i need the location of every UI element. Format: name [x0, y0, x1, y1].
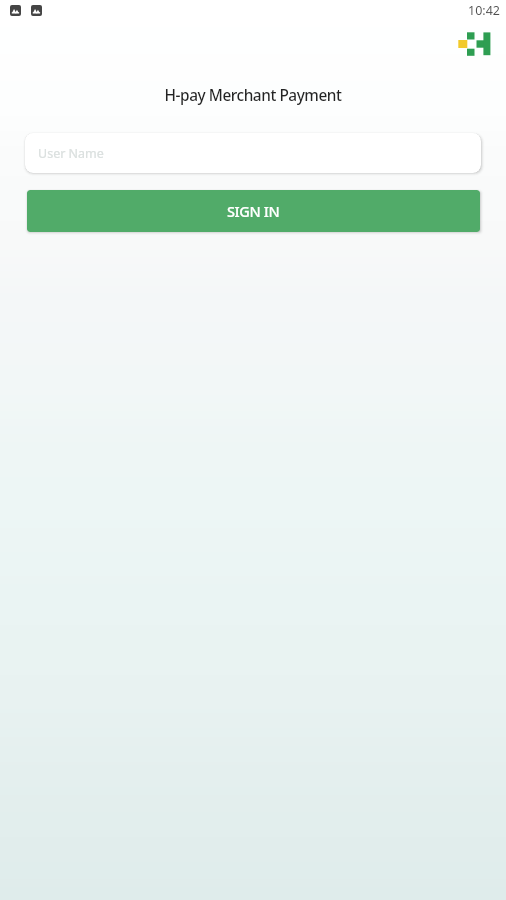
button[interactable]: User Name — [25, 133, 481, 173]
staticText: User Name — [38, 145, 104, 162]
staticText: H-pay Merchant Payment — [0, 85, 506, 106]
staticText: 10:42 — [468, 2, 500, 19]
staticText: SIGN IN — [227, 201, 280, 221]
other: H-pay logo — [458, 32, 491, 56]
button[interactable]: SIGN IN — [27, 190, 480, 232]
